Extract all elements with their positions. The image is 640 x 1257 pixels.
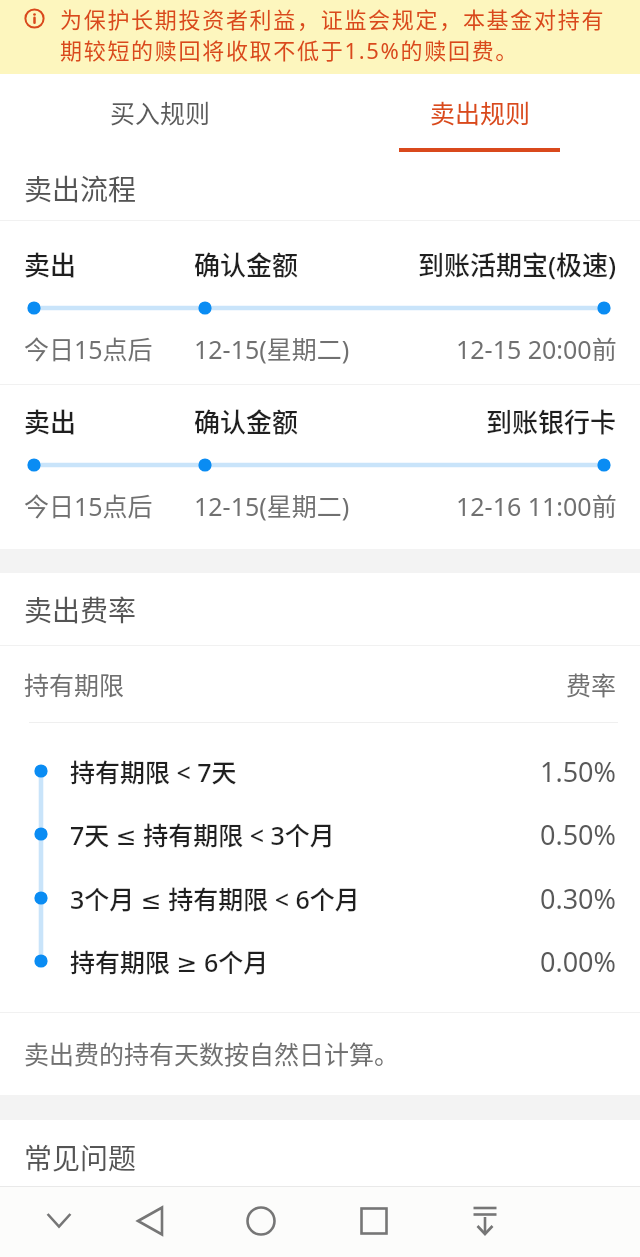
staticText: 卖出费的持有天数按自然日计算。 [24,1035,400,1071]
staticText: 3个月 ≤ 持有期限 < 6个月 [70,880,360,916]
staticText: 确认金额 [194,245,299,283]
staticText: 确认金额 [194,402,299,440]
staticText: 卖出流程 [24,168,137,209]
staticText: 7天 ≤ 持有期限 < 3个月 [70,816,335,852]
button[interactable]: Home [227,1187,295,1255]
staticText: 为保护长期投资者利益，证监会规定，本基金对持有期较短的赎回将收取不低于1.5%的… [60,2,620,65]
staticText: 买入规则 [110,94,211,130]
button[interactable]: 买入规则 [0,74,320,152]
button[interactable]: Recents [340,1187,408,1255]
staticText: 卖出 [24,245,77,283]
staticText: 到账银行卡 [486,402,617,440]
staticText: 今日15点后 [24,487,153,523]
button[interactable]: 卖出规则 [320,74,640,152]
other: Info [24,8,45,29]
staticText: 到账活期宝(极速) [418,245,617,283]
staticText: 12-15 20:00前 [456,330,617,366]
staticText: 1.50% [540,753,617,790]
button[interactable]: Back [117,1187,185,1255]
staticText: 卖出 [24,402,77,440]
staticText: 费率 [566,666,617,702]
staticText: 0.00% [540,943,617,980]
staticText: 12-16 11:00前 [456,487,617,523]
staticText: 12-15(星期二) [194,487,350,523]
staticText: 今日15点后 [24,330,153,366]
button[interactable]: Collapse [451,1187,519,1255]
staticText: 持有期限 < 7天 [70,753,237,789]
button[interactable]: Hide keyboard [25,1187,93,1255]
staticText: 0.30% [540,880,617,917]
staticText: 卖出费率 [24,589,137,630]
staticText: 卖出规则 [430,94,531,130]
staticText: 12-15(星期二) [194,330,350,366]
staticText: 持有期限 [24,666,125,702]
staticText: 常见问题 [24,1137,137,1178]
staticText: 0.50% [540,816,617,853]
staticText: 持有期限 ≥ 6个月 [70,943,269,979]
